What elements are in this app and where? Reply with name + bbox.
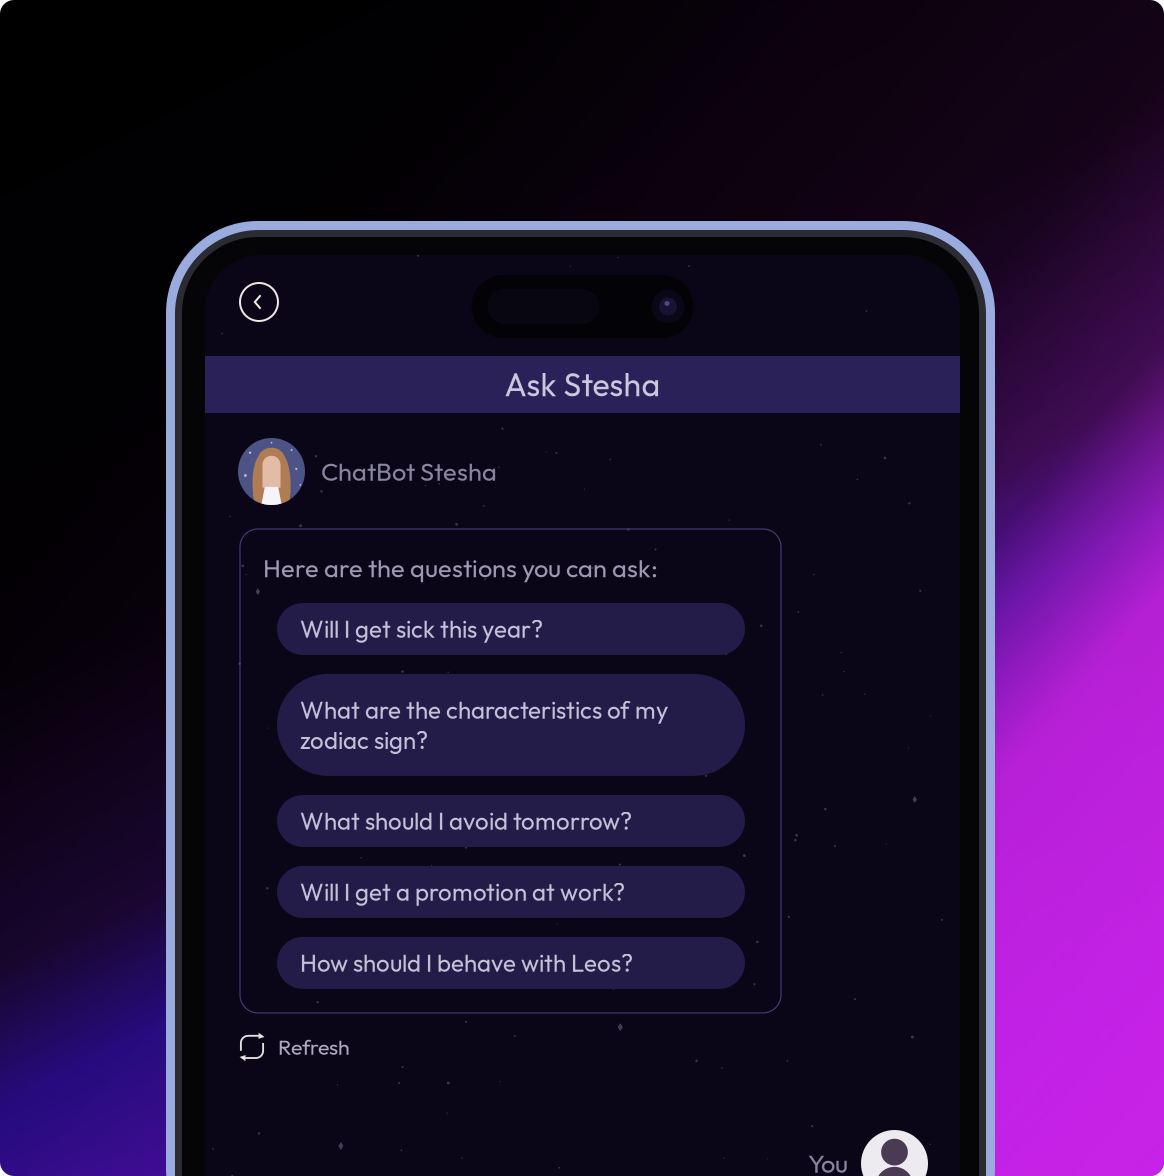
button[interactable]: Refresh	[237, 1032, 350, 1062]
button[interactable]: How should I behave with Leos?	[277, 937, 745, 989]
staticText: Ask Stesha	[504, 364, 660, 405]
staticText: Will I get sick this year?	[300, 614, 543, 644]
staticText: How should I behave with Leos?	[300, 948, 633, 978]
button[interactable]: What are the characteristics of my zodia…	[277, 674, 745, 776]
button[interactable]: Back	[240, 283, 278, 321]
staticText: What should I avoid tomorrow?	[300, 806, 632, 836]
staticText: You	[808, 1147, 848, 1176]
staticText: Will I get a promotion at work?	[300, 877, 625, 907]
button[interactable]: What should I avoid tomorrow?	[277, 795, 745, 847]
button[interactable]: Will I get a promotion at work?	[277, 866, 745, 918]
staticText: What are the characteristics of my zodia…	[300, 695, 668, 755]
staticText: Here are the questions you can ask:	[263, 552, 658, 584]
staticText: ChatBot Stesha	[321, 455, 497, 487]
button[interactable]: Will I get sick this year?	[277, 603, 745, 655]
staticText: Refresh	[278, 1033, 350, 1060]
